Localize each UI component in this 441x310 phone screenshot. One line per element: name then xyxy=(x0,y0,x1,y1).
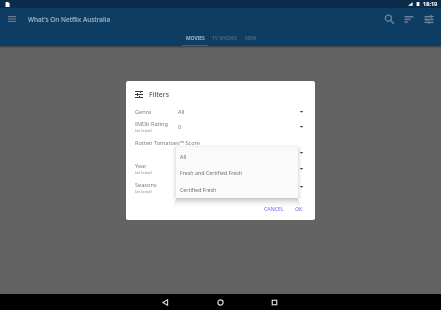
button[interactable]: Open navigation menu xyxy=(4,11,20,27)
button[interactable]: Certified Fresh xyxy=(176,181,298,197)
staticText: 18:19 xyxy=(423,0,438,8)
staticText: (at least) xyxy=(135,128,152,134)
staticText: Year xyxy=(135,162,147,170)
button[interactable]: CANCEL xyxy=(264,205,284,212)
button[interactable]: Filters xyxy=(135,90,169,99)
staticText: All xyxy=(180,153,187,160)
button[interactable]: NEW xyxy=(242,30,260,46)
staticText: (at least) xyxy=(135,189,152,195)
staticText: Filters xyxy=(149,90,169,99)
button[interactable]: OK xyxy=(295,205,303,212)
staticText: Fresh and Certified Fresh xyxy=(180,169,243,176)
button[interactable]: All xyxy=(176,148,298,164)
button[interactable]: Sort xyxy=(401,11,417,27)
staticText: Genre xyxy=(135,108,152,116)
button[interactable]: Back xyxy=(158,295,173,310)
staticText: 0 xyxy=(178,123,182,131)
staticText: CANCEL xyxy=(264,205,284,212)
staticText: Seasons xyxy=(135,181,157,189)
button[interactable]: Seasons xyxy=(126,181,315,197)
staticText: NEW xyxy=(245,35,257,42)
staticText: What's On Netflix Australia xyxy=(28,15,111,24)
button[interactable]: MOVIES xyxy=(182,30,208,46)
staticText: (at least) xyxy=(135,170,152,176)
staticText: Certified Fresh xyxy=(180,186,217,193)
staticText: OK xyxy=(295,205,303,212)
staticText: Rotten Tomatoes™ Score xyxy=(135,139,200,147)
button[interactable]: Home xyxy=(213,295,228,310)
button[interactable]: Fresh and Certified Fresh xyxy=(176,164,298,180)
button[interactable]: Rotten Tomatoes™ Score xyxy=(135,139,200,147)
button[interactable]: Recent apps xyxy=(267,295,282,310)
staticText: IMDb Rating xyxy=(135,120,168,128)
staticText: MOVIES xyxy=(186,35,205,42)
button[interactable]: Search xyxy=(381,11,397,27)
button[interactable]: Year xyxy=(126,162,315,178)
button[interactable]: IMDb Rating xyxy=(126,120,315,136)
button[interactable]: TV SHOWS xyxy=(211,30,239,46)
staticText: All xyxy=(178,108,185,116)
button[interactable]: Genre xyxy=(126,108,315,119)
staticText: TV SHOWS xyxy=(212,35,238,42)
button[interactable]: Filter xyxy=(421,11,437,27)
